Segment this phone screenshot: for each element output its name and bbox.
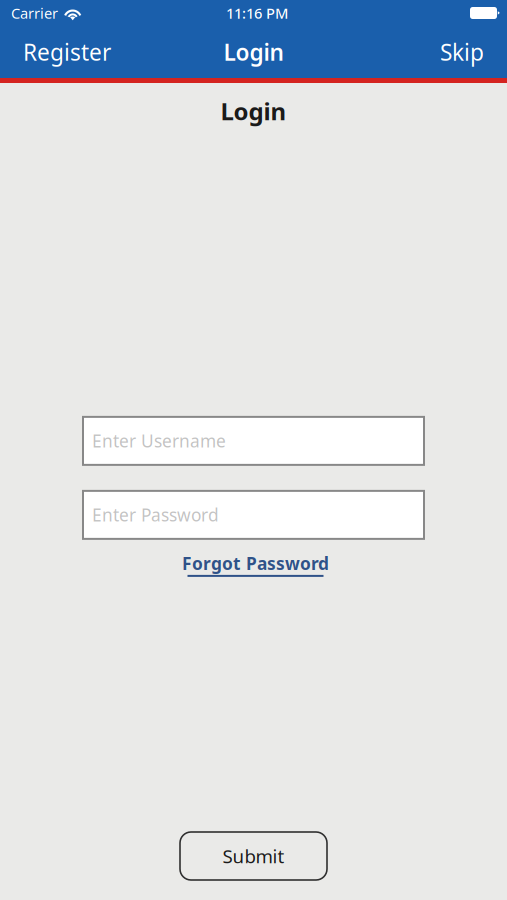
staticText: Forgot Password	[182, 552, 329, 575]
button[interactable]: Forgot Password	[83, 552, 424, 577]
button[interactable]: Enter Password	[83, 491, 424, 539]
staticText: Login	[220, 95, 286, 127]
staticText: 11:16 PM	[226, 3, 288, 23]
staticText: Enter Password	[92, 503, 219, 526]
button[interactable]: Register	[0, 30, 134, 74]
button[interactable]: Submit	[180, 832, 327, 880]
staticText: Skip	[440, 37, 484, 67]
staticText: Submit	[222, 844, 284, 868]
staticText: Carrier	[11, 3, 58, 23]
staticText: Login	[223, 37, 283, 67]
button[interactable]: Enter Username	[83, 417, 424, 465]
staticText: Register	[23, 37, 111, 67]
staticText: Enter Username	[92, 429, 226, 452]
button[interactable]: Skip	[417, 30, 507, 74]
